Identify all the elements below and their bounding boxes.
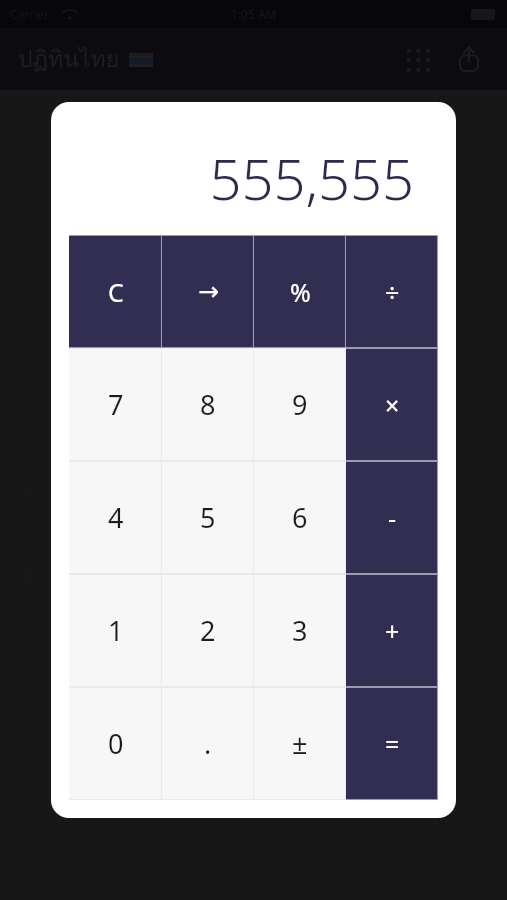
button[interactable]: 2 [162,574,254,687]
button[interactable]: ÷ [346,235,438,348]
staticText: 4 [108,499,124,536]
button[interactable]: 5 [162,461,254,574]
staticText: 6 [292,499,308,536]
button[interactable]: 3 [254,574,346,687]
button[interactable]: 9 [254,348,346,461]
staticText: 5 [200,499,216,536]
staticText: 8 [200,386,216,423]
button[interactable]: + [346,574,438,687]
staticText: 1:05 AM [231,6,277,22]
button[interactable]: × [346,348,438,461]
staticText: + [385,614,400,648]
button[interactable]: → [162,235,254,348]
button[interactable]: 0 [69,687,162,800]
staticText: × [385,388,400,422]
staticText: 3 [292,612,308,649]
staticText: 7 [108,386,124,423]
staticText: 0 [108,725,124,762]
button[interactable]: % [254,235,346,348]
staticText: ปฏิทินไทย [18,41,120,78]
button[interactable]: ± [254,687,346,800]
button[interactable]: 4 [69,461,162,574]
staticText: Carrier [10,6,50,22]
button[interactable]: Share [443,33,495,85]
staticText: - [388,501,397,535]
staticText: = [385,727,400,761]
button[interactable]: = [346,687,438,800]
staticText: → [198,277,219,306]
staticText: 1 [108,612,124,649]
staticText: 2 [200,612,216,649]
staticText: 555,555 [209,140,414,216]
staticText: 9 [292,386,308,423]
button[interactable]: 6 [254,461,346,574]
staticText: ± [292,725,308,762]
staticText: % [290,275,311,309]
button[interactable]: - [346,461,438,574]
staticText: C [108,275,124,309]
button[interactable]: 8 [162,348,254,461]
button[interactable]: 7 [69,348,162,461]
button[interactable]: C [69,235,162,348]
button[interactable]: . [162,687,254,800]
staticText: ÷ [385,275,400,309]
staticText: . [204,725,212,762]
button[interactable]: 1 [69,574,162,687]
